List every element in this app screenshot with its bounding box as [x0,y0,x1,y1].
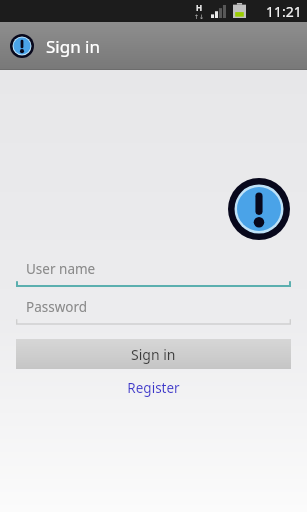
other: App logo [228,178,290,240]
staticText: Sign in [46,35,100,58]
staticText: Register [127,379,180,397]
staticText: User name [26,260,96,278]
staticText: 11:21 [266,2,302,21]
staticText: ↑↓ [194,13,205,20]
other: App icon [10,34,34,58]
button[interactable]: User name [16,254,291,288]
staticText: Sign in [131,345,176,364]
button[interactable]: Register [16,376,291,400]
staticText: Password [26,298,88,316]
staticText: H [196,2,203,13]
button[interactable]: Sign in [16,339,291,369]
button[interactable]: Password [16,292,291,326]
